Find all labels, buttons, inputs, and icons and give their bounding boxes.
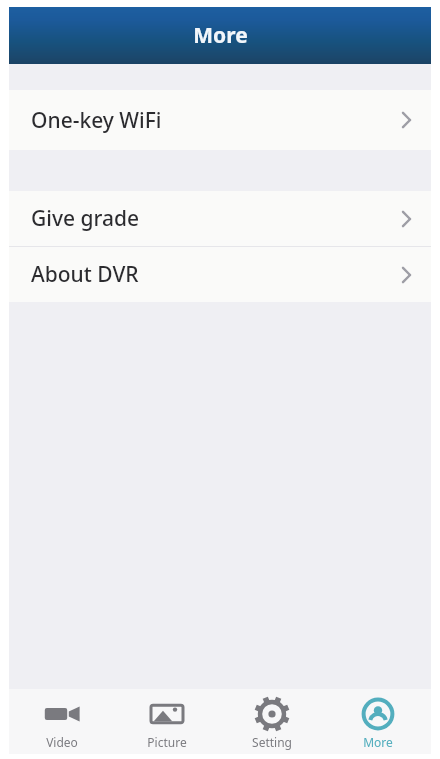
button[interactable]: One-key WiFi <box>9 90 431 150</box>
staticText: More <box>193 21 248 50</box>
staticText: Give grade <box>31 204 140 233</box>
button[interactable]: Give grade <box>9 191 431 246</box>
button[interactable]: About DVR <box>9 247 431 302</box>
staticText: Setting <box>252 734 292 750</box>
staticText: One-key WiFi <box>31 106 162 135</box>
staticText: Picture <box>147 734 187 750</box>
button[interactable]: Picture <box>114 689 219 754</box>
staticText: Video <box>46 734 78 750</box>
button[interactable]: Video <box>9 689 114 754</box>
staticText: About DVR <box>31 260 139 289</box>
button[interactable]: Setting <box>219 689 325 754</box>
button[interactable]: More <box>325 689 431 754</box>
staticText: More <box>363 734 393 750</box>
